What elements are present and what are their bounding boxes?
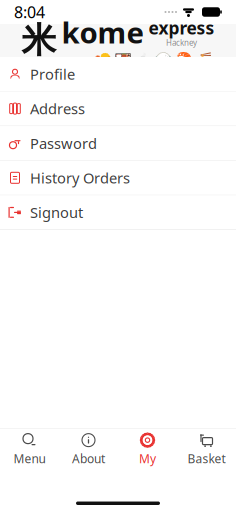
staticText: express xyxy=(148,16,214,39)
staticText: Password xyxy=(30,133,97,153)
staticText: 🍱 xyxy=(114,52,132,68)
staticText: Address xyxy=(30,99,85,118)
staticText: 米 xyxy=(21,19,56,62)
staticText: Basket xyxy=(187,451,225,466)
staticText: Signout xyxy=(30,203,83,222)
button[interactable]: Signout xyxy=(0,195,236,230)
button[interactable]: About xyxy=(59,427,118,470)
staticText: About xyxy=(72,451,105,466)
button[interactable]: Profile xyxy=(0,57,236,92)
staticText: 🍲 xyxy=(134,52,152,68)
staticText: 8:04 xyxy=(14,1,45,23)
staticText: kome xyxy=(61,13,144,52)
staticText: 🍣 xyxy=(174,52,192,68)
button[interactable]: Menu xyxy=(0,427,59,470)
button[interactable]: Password xyxy=(0,126,236,161)
button[interactable]: Address xyxy=(0,92,236,126)
button[interactable]: History Orders xyxy=(0,161,236,195)
staticText: History Orders xyxy=(30,168,130,188)
staticText: Menu xyxy=(13,451,45,466)
staticText: 🍤 xyxy=(94,52,112,68)
button[interactable]: My xyxy=(118,427,177,470)
staticText: My xyxy=(139,451,156,466)
staticText: Profile xyxy=(30,64,75,84)
button[interactable]: Basket xyxy=(177,427,236,470)
staticText: Hackney xyxy=(166,37,197,48)
staticText: 🍜 xyxy=(194,52,212,68)
staticText: 🍚 xyxy=(154,52,172,68)
